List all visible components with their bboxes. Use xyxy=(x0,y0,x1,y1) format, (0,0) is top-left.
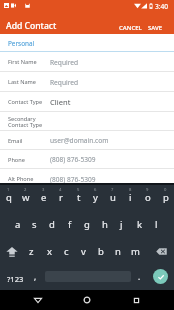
button[interactable]: h xyxy=(96,211,113,238)
staticText: c xyxy=(64,245,69,258)
staticText: Last Name xyxy=(8,78,50,86)
staticText: 2 xyxy=(24,187,27,193)
button[interactable]: Alt Phone xyxy=(0,169,174,189)
button[interactable]: First Name xyxy=(0,52,174,72)
button[interactable]: . xyxy=(133,265,146,292)
staticText: 1 xyxy=(7,187,10,193)
button[interactable]: 2 xyxy=(17,184,34,211)
staticText: 9 xyxy=(146,187,149,193)
button[interactable]: k xyxy=(131,211,148,238)
button[interactable]: 9 xyxy=(139,184,156,211)
staticText: m xyxy=(131,245,140,258)
staticText: n xyxy=(115,245,121,258)
staticText: l xyxy=(155,218,158,231)
staticText: 0 xyxy=(164,187,167,193)
staticText: q xyxy=(6,191,12,204)
staticText: Secondary Contact Type xyxy=(8,115,50,129)
staticText: s xyxy=(32,218,37,231)
staticText: z xyxy=(29,245,34,258)
staticText: i xyxy=(129,191,132,204)
staticText: Contact Type xyxy=(8,98,50,106)
staticText: Add Contact xyxy=(6,20,57,32)
staticText: v xyxy=(81,245,86,258)
button[interactable]: n xyxy=(109,238,126,265)
staticText: g xyxy=(84,218,90,231)
button[interactable]: a xyxy=(9,211,26,238)
button[interactable]: 1 xyxy=(0,184,17,211)
staticText: u xyxy=(110,191,116,204)
button[interactable]: s xyxy=(26,211,43,238)
staticText: Required xyxy=(50,78,79,87)
button[interactable]: SAVE xyxy=(146,24,165,32)
staticText: e xyxy=(41,191,47,204)
staticText: 4 xyxy=(59,187,62,193)
button[interactable]: z xyxy=(23,238,40,265)
button[interactable]: Backspace xyxy=(148,238,174,265)
staticText: w xyxy=(22,191,30,204)
button[interactable]: 0 xyxy=(157,184,174,211)
button[interactable]: Contact Type xyxy=(0,92,174,112)
staticText: 3:40 xyxy=(155,2,169,11)
button[interactable]: 3 xyxy=(35,184,52,211)
button[interactable]: j xyxy=(113,211,130,238)
staticText: 7 xyxy=(111,187,114,193)
staticText: t xyxy=(77,191,81,204)
button[interactable]: 6 xyxy=(87,184,104,211)
staticText: r xyxy=(59,191,63,204)
staticText: , xyxy=(34,271,37,282)
button[interactable]: Phone xyxy=(0,150,174,169)
staticText: ?123 xyxy=(7,274,24,284)
staticText: CANCEL xyxy=(119,24,142,32)
staticText: user@domain.com xyxy=(50,136,109,145)
button[interactable]: 4 xyxy=(52,184,69,211)
staticText: b xyxy=(98,245,104,258)
button[interactable]: Recents xyxy=(126,290,146,310)
staticText: p xyxy=(163,191,169,204)
button[interactable]: g xyxy=(78,211,95,238)
staticText: a xyxy=(15,218,21,231)
button[interactable]: Back xyxy=(28,290,48,310)
button[interactable]: d xyxy=(43,211,60,238)
staticText: h xyxy=(102,218,108,231)
button[interactable]: CANCEL xyxy=(117,24,144,32)
staticText: Client xyxy=(50,97,71,107)
button[interactable]: ?123 xyxy=(2,265,28,292)
button[interactable]: c xyxy=(58,238,75,265)
button[interactable]: Last Name xyxy=(0,72,174,92)
staticText: 3 xyxy=(42,187,45,193)
staticText: 5 xyxy=(77,187,80,193)
button[interactable]: x xyxy=(41,238,58,265)
button[interactable]: f xyxy=(61,211,78,238)
staticText: j xyxy=(120,218,123,231)
button[interactable]: b xyxy=(92,238,109,265)
staticText: (808) 876-5309 xyxy=(50,175,96,184)
staticText: (808) 876-5309 xyxy=(50,155,96,164)
staticText: y xyxy=(93,191,98,204)
staticText: First Name xyxy=(8,58,50,66)
button[interactable]: Shift xyxy=(0,238,24,265)
staticText: f xyxy=(68,218,72,231)
button[interactable]: Email xyxy=(0,131,174,150)
staticText: Required xyxy=(50,58,79,67)
button[interactable]: m xyxy=(127,238,144,265)
button[interactable]: 8 xyxy=(122,184,139,211)
button[interactable]: Secondary Contact Type xyxy=(0,112,174,131)
button[interactable]: , xyxy=(28,265,42,292)
button[interactable]: v xyxy=(75,238,92,265)
staticText: 6 xyxy=(94,187,97,193)
button[interactable]: l xyxy=(148,211,165,238)
button[interactable]: Enter xyxy=(153,269,168,284)
staticText: Alt Phone xyxy=(8,175,50,183)
staticText: Personal xyxy=(8,39,35,48)
button[interactable]: 7 xyxy=(104,184,121,211)
staticText: k xyxy=(137,218,143,231)
staticText: SAVE xyxy=(148,24,163,32)
button[interactable]: Home xyxy=(77,290,97,310)
staticText: d xyxy=(49,218,55,231)
staticText: o xyxy=(145,191,151,204)
staticText: 8 xyxy=(129,187,132,193)
button[interactable]: 5 xyxy=(70,184,87,211)
staticText: x xyxy=(47,245,53,258)
staticText: Email xyxy=(8,137,50,145)
